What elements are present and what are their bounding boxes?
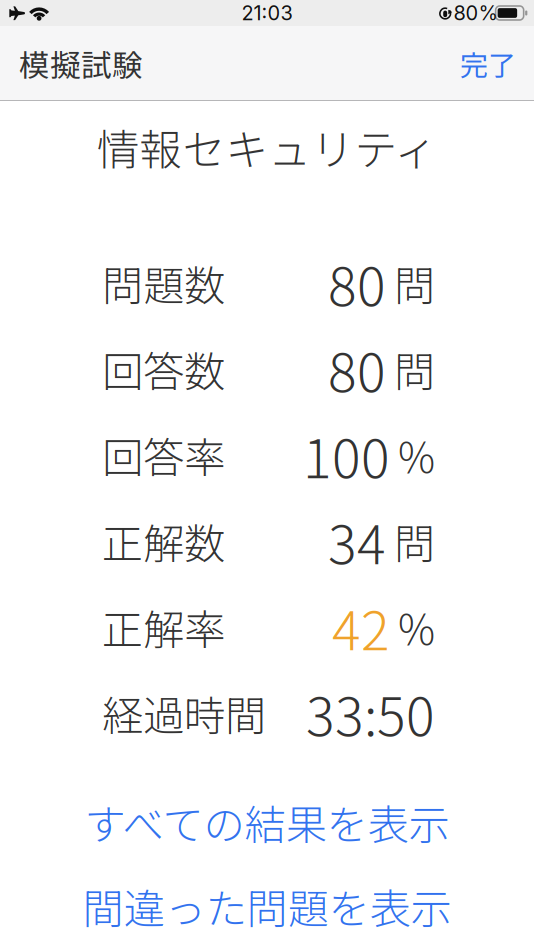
staticText: 完了 xyxy=(460,43,516,84)
staticText: 問 xyxy=(394,511,435,571)
staticText: 問 xyxy=(394,339,435,399)
staticText: 80 xyxy=(328,330,386,408)
staticText: 42 xyxy=(332,588,390,666)
staticText: 経過時間 xyxy=(102,683,266,743)
staticText: 正解数 xyxy=(102,511,225,571)
staticText: 回答数 xyxy=(102,339,225,399)
staticText: 80 xyxy=(328,244,386,322)
button[interactable]: すべての結果を表示 xyxy=(0,790,534,854)
staticText: 間違った問題を表示 xyxy=(82,876,451,936)
staticText: % xyxy=(398,597,435,657)
button[interactable]: 完了 xyxy=(442,29,534,98)
staticText: 34 xyxy=(328,502,386,580)
staticText: 情報セキュリティ xyxy=(96,116,437,178)
staticText: 回答率 xyxy=(102,425,225,485)
staticText: 正解率 xyxy=(102,597,225,657)
staticText: 80% xyxy=(453,1,497,25)
staticText: 模擬試験 xyxy=(19,41,143,86)
staticText: 問題数 xyxy=(102,253,225,313)
staticText: 問 xyxy=(394,253,435,313)
staticText: % xyxy=(398,425,435,485)
staticText: 21:03 xyxy=(241,1,292,25)
button[interactable]: 間違った問題を表示 xyxy=(0,874,534,938)
staticText: 33:50 xyxy=(306,674,435,752)
staticText: 100 xyxy=(303,416,390,494)
staticText: すべての結果を表示 xyxy=(84,792,449,852)
